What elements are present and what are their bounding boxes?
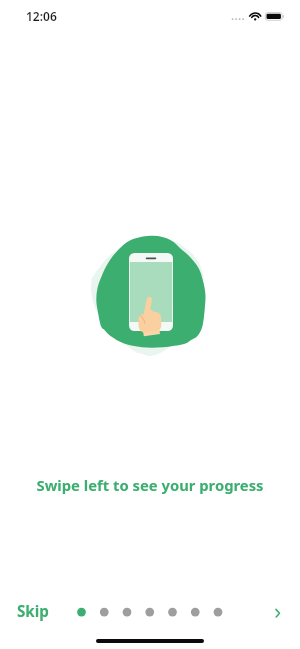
button[interactable]: Next — [263, 599, 291, 627]
staticText: Swipe left to see your progress — [0, 475, 300, 495]
staticText: 12:06 — [26, 8, 57, 24]
staticText: Skip — [17, 601, 49, 622]
button[interactable]: Skip — [10, 594, 56, 629]
